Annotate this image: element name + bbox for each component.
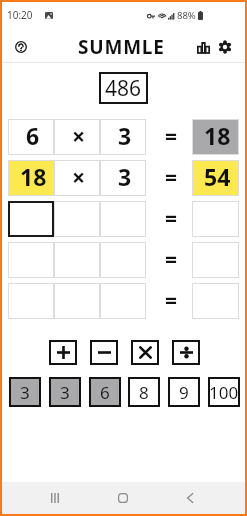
button[interactable] bbox=[54, 242, 100, 278]
button[interactable] bbox=[100, 242, 146, 278]
staticText: 9 bbox=[179, 381, 189, 404]
button[interactable]: 6 bbox=[89, 377, 121, 407]
staticText: 100 bbox=[209, 381, 239, 404]
button[interactable]: × bbox=[54, 119, 100, 155]
button[interactable]: Statistics bbox=[192, 36, 214, 58]
staticText: = bbox=[165, 245, 178, 274]
staticText: × bbox=[72, 161, 86, 192]
button[interactable] bbox=[100, 201, 146, 237]
button[interactable]: Home bbox=[102, 482, 144, 514]
staticText: = bbox=[165, 122, 178, 151]
button[interactable]: 54 bbox=[192, 160, 239, 196]
button[interactable] bbox=[90, 340, 118, 365]
button[interactable] bbox=[131, 340, 159, 365]
staticText: 6 bbox=[100, 381, 110, 404]
button[interactable]: 3 bbox=[9, 377, 41, 407]
staticText: 3 bbox=[118, 120, 132, 151]
button[interactable] bbox=[8, 242, 54, 278]
staticText: 8 bbox=[139, 381, 149, 404]
button[interactable]: 3 bbox=[49, 377, 81, 407]
button[interactable]: 9 bbox=[168, 377, 200, 407]
staticText: 18 bbox=[20, 161, 47, 192]
button[interactable] bbox=[54, 283, 100, 319]
staticText: 88% bbox=[177, 9, 196, 22]
staticText: = bbox=[165, 163, 178, 192]
staticText: 18 bbox=[204, 120, 231, 151]
button[interactable]: Settings bbox=[214, 36, 236, 58]
button[interactable] bbox=[100, 283, 146, 319]
staticText: 3 bbox=[118, 161, 132, 192]
staticText: 6 bbox=[26, 120, 40, 151]
button[interactable] bbox=[8, 283, 54, 319]
staticText: 10:20 bbox=[7, 8, 33, 22]
button[interactable]: 6 bbox=[8, 119, 54, 155]
button[interactable]: 3 bbox=[100, 119, 146, 155]
button[interactable]: 3 bbox=[100, 160, 146, 196]
staticText: = bbox=[165, 286, 178, 315]
staticText: 486 bbox=[105, 74, 142, 103]
button[interactable]: 100 bbox=[208, 377, 240, 407]
staticText: = bbox=[165, 204, 178, 233]
button[interactable]: Help bbox=[9, 35, 33, 59]
button[interactable]: Recent apps bbox=[34, 482, 76, 514]
button[interactable] bbox=[192, 201, 239, 237]
staticText: × bbox=[72, 120, 86, 151]
staticText: 54 bbox=[204, 161, 231, 192]
button[interactable]: 8 bbox=[128, 377, 160, 407]
button[interactable]: 18 bbox=[192, 119, 239, 155]
staticText: 3 bbox=[20, 381, 30, 404]
button[interactable] bbox=[172, 340, 200, 365]
button[interactable] bbox=[192, 283, 239, 319]
button[interactable] bbox=[49, 340, 77, 365]
button[interactable]: 18 bbox=[8, 160, 54, 196]
button[interactable] bbox=[8, 201, 54, 237]
button[interactable]: Back bbox=[169, 482, 211, 514]
staticText: SUMMLE bbox=[78, 34, 165, 60]
button[interactable] bbox=[54, 201, 100, 237]
button[interactable]: × bbox=[54, 160, 100, 196]
button[interactable] bbox=[192, 242, 239, 278]
staticText: 3 bbox=[60, 381, 70, 404]
